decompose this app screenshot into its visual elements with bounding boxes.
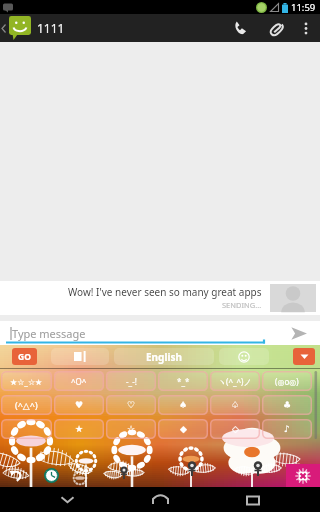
staticText: 1111 xyxy=(37,20,65,36)
button[interactable]: ★☆_☆★ xyxy=(1,371,52,391)
button[interactable]: (◎o◎) xyxy=(262,371,312,391)
staticText: ♪ xyxy=(284,424,290,434)
button[interactable]: Attach xyxy=(258,14,294,42)
button[interactable]: -_-! xyxy=(106,371,156,391)
button[interactable]: Recents xyxy=(224,487,282,512)
staticText: ^O^ xyxy=(71,376,87,387)
button[interactable] xyxy=(219,348,269,365)
button[interactable]: ♠ xyxy=(158,395,208,415)
button[interactable]: Back xyxy=(38,487,96,512)
button[interactable]: Back xyxy=(0,14,32,42)
button[interactable]: Hide keyboard xyxy=(293,348,315,365)
button[interactable]: GO xyxy=(12,348,37,365)
staticText: ★☆_☆★ xyxy=(10,376,43,387)
button[interactable]: ★ xyxy=(54,419,104,439)
button[interactable]: Call xyxy=(222,14,258,42)
staticText: ヽ(^_^)ノ xyxy=(218,376,252,387)
button[interactable]: Delete xyxy=(286,464,320,487)
button[interactable] xyxy=(70,464,178,487)
staticText: (^△^) xyxy=(15,399,38,411)
button[interactable]: ☆ xyxy=(106,419,156,439)
button[interactable]: ^O^ xyxy=(54,371,104,391)
button[interactable]: ヽ(^_^)ノ xyxy=(210,371,260,391)
button[interactable]: ♪ xyxy=(262,419,312,439)
staticText: SENDING... xyxy=(222,300,262,310)
staticText: English xyxy=(146,350,182,364)
staticText: Wow! I've never seen so many great apps xyxy=(68,285,262,299)
button[interactable]: ♣ xyxy=(262,395,312,415)
staticText: GO xyxy=(18,351,31,363)
button[interactable]: ♥ xyxy=(54,395,104,415)
staticText: ◇ xyxy=(232,424,239,434)
button[interactable]: ◆ xyxy=(158,419,208,439)
staticText: (◎o◎) xyxy=(275,376,299,387)
button[interactable]: *_* xyxy=(158,371,208,391)
button[interactable]: ♡ xyxy=(106,395,156,415)
button[interactable]: More options xyxy=(294,14,318,42)
button[interactable]: ♤ xyxy=(210,395,260,415)
staticText: *_* xyxy=(177,376,190,387)
button[interactable]: ◇ xyxy=(210,419,260,439)
button[interactable]: Undo xyxy=(0,464,32,487)
staticText: -_-! xyxy=(126,376,137,387)
staticText: Type message xyxy=(12,326,86,341)
staticText: ♥ xyxy=(75,400,84,410)
staticText: 11:59 xyxy=(291,1,316,14)
button[interactable]: Send xyxy=(276,321,320,345)
staticText: ♣ xyxy=(283,400,292,410)
staticText: ◆ xyxy=(180,424,187,434)
button[interactable]: Recent xyxy=(32,464,70,487)
staticText: ♤ xyxy=(231,400,240,410)
staticText: ☆ xyxy=(127,424,136,434)
staticText: ♠ xyxy=(179,400,188,410)
button[interactable] xyxy=(178,464,286,487)
button[interactable] xyxy=(1,419,52,439)
button[interactable]: English xyxy=(114,348,214,365)
staticText: ★ xyxy=(75,424,84,434)
staticText: ♡ xyxy=(127,400,136,410)
button[interactable] xyxy=(51,348,109,365)
button[interactable]: Home xyxy=(131,487,189,512)
button[interactable]: (^△^) xyxy=(1,395,52,415)
